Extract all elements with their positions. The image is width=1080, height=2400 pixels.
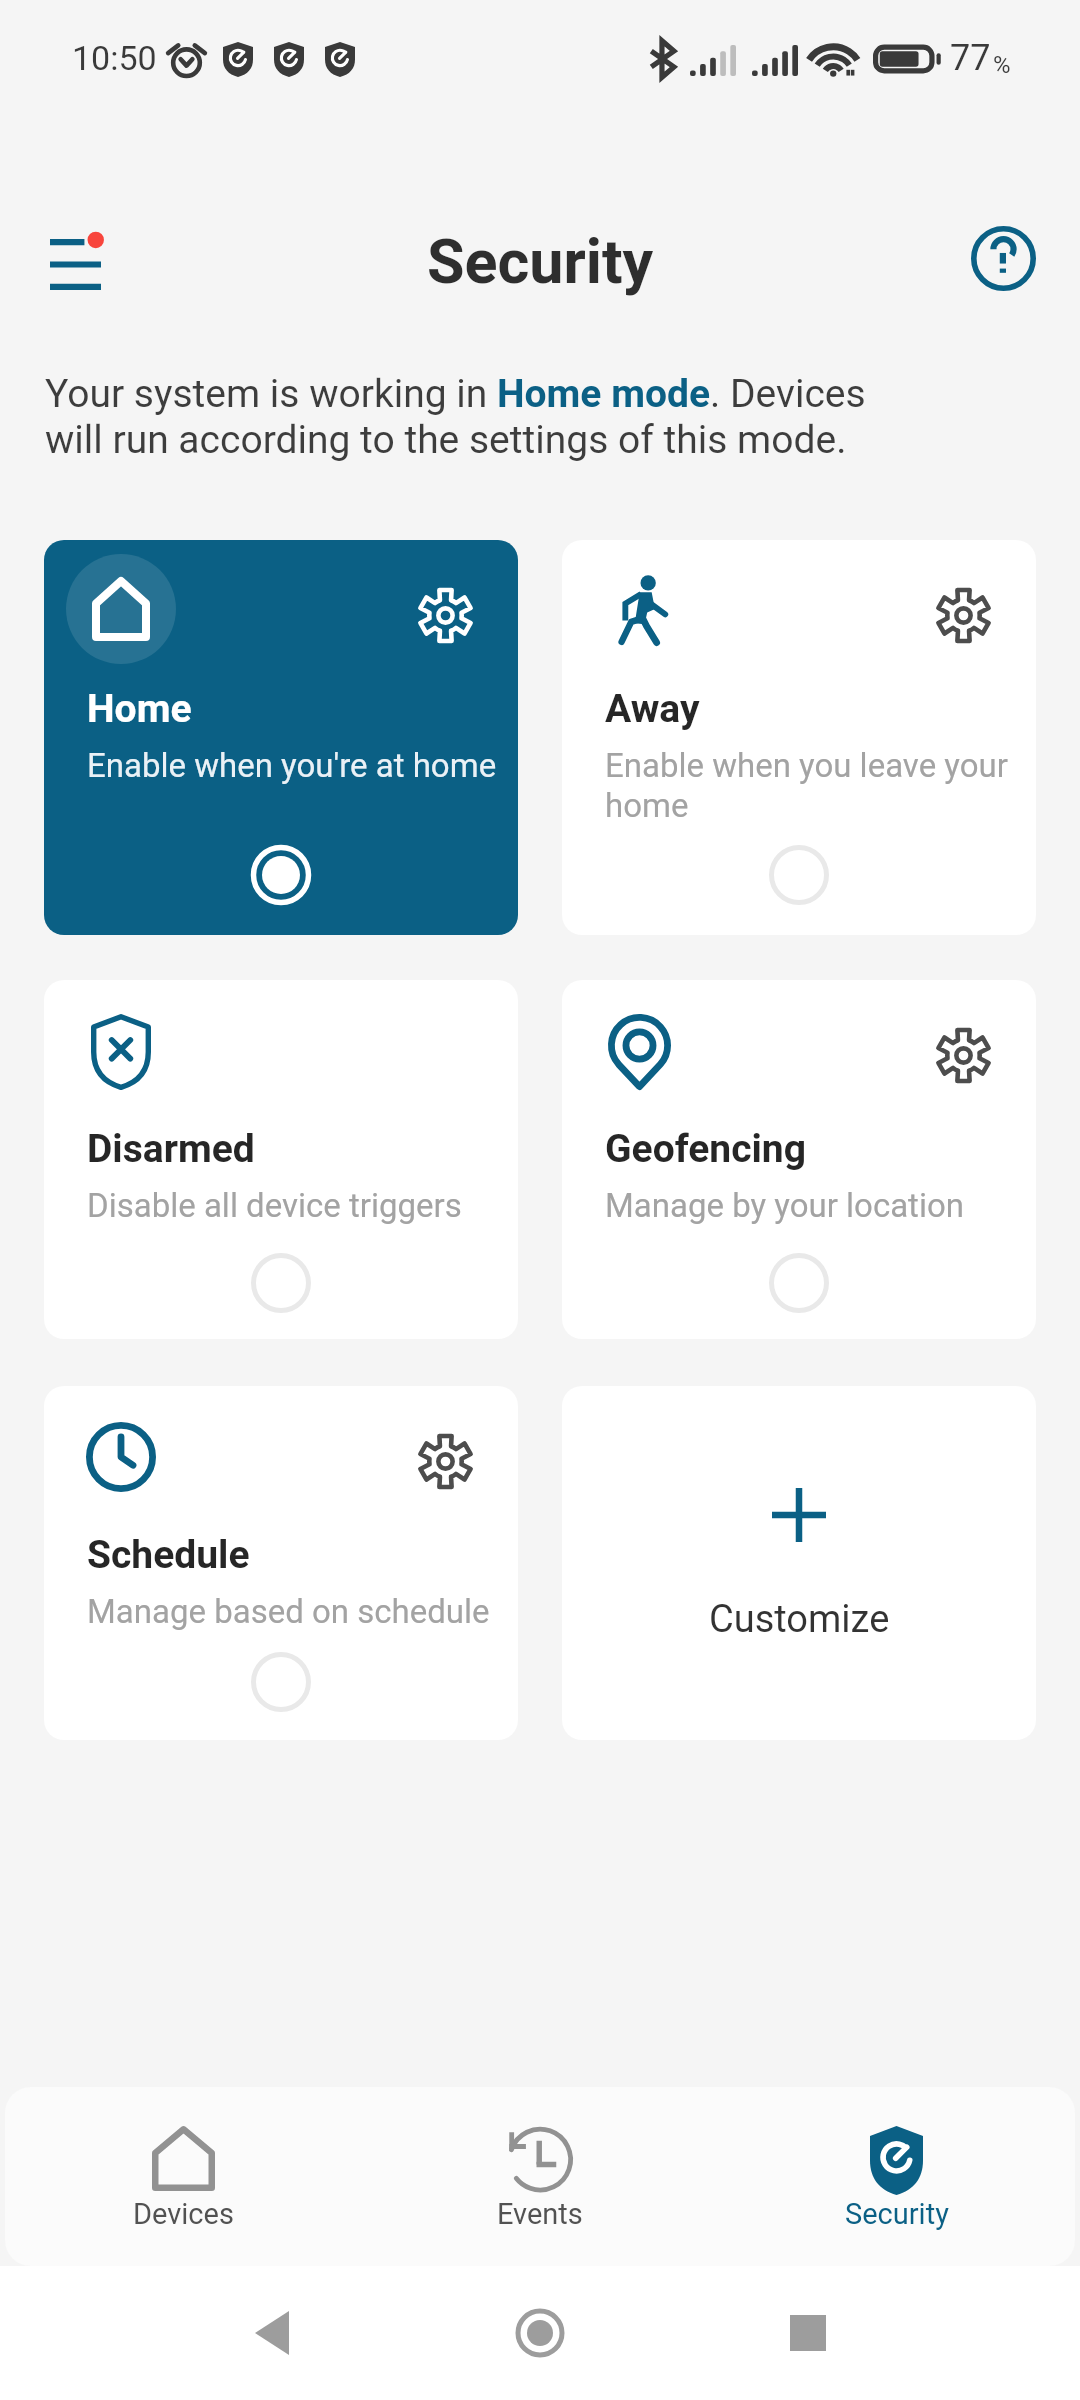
staticText: Geofencing [605,1126,806,1172]
button[interactable]: Settings [562,980,1036,1339]
button[interactable]: Security [718,2087,1075,2266]
button[interactable]: Devices [5,2087,361,2266]
button[interactable]: Select mode [760,1244,838,1322]
button[interactable]: Disarmed [44,980,518,1339]
staticText: 77 [950,37,991,79]
staticText: Devices [133,2197,234,2231]
button[interactable]: Settings [44,1386,518,1740]
button[interactable]: Customize [562,1386,1036,1740]
staticText: Enable when you're at home [87,746,497,785]
staticText: Enable when you leave your home [605,746,1030,826]
staticText: Security [845,2197,949,2231]
button[interactable]: Settings [400,570,490,660]
button[interactable]: Back [236,2297,308,2369]
staticText: Your system is working in Home mode. Dev… [45,371,908,463]
button[interactable]: Recents [772,2297,844,2369]
staticText: Security [427,226,654,297]
button[interactable]: Select mode [760,836,838,914]
button[interactable]: Settings [562,540,1036,935]
staticText: Manage based on schedule [87,1592,490,1631]
button[interactable]: Menu [26,215,125,314]
button[interactable]: Select mode [242,1244,320,1322]
staticText: Manage by your location [605,1186,964,1225]
button[interactable]: Help [951,206,1055,310]
button[interactable]: Settings [400,1416,490,1506]
staticText: Schedule [87,1532,250,1578]
staticText: Events [497,2197,583,2231]
staticText: 10:50 [72,38,157,78]
staticText: Away [605,686,700,732]
staticText: % [993,51,1011,79]
button[interactable]: Selected mode [242,836,320,914]
staticText: Disarmed [87,1126,255,1172]
button[interactable]: Settings [918,1010,1008,1100]
button[interactable]: Settings [918,570,1008,660]
button[interactable]: Settings [44,540,518,935]
staticText: Customize [709,1597,890,1642]
staticText: Home [87,686,192,732]
button[interactable]: Events [361,2087,718,2266]
button[interactable]: Select mode [242,1643,320,1721]
staticText: Disable all device triggers [87,1186,462,1225]
button[interactable]: Home [504,2297,576,2369]
